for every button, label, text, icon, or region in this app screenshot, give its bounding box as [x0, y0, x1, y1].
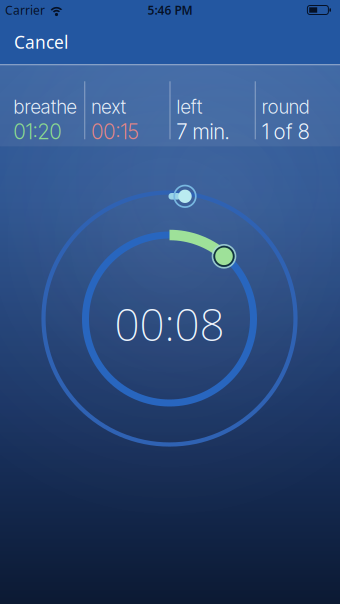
staticText: 00:08	[114, 295, 224, 353]
staticText: next	[91, 95, 126, 118]
button[interactable]: Cancel	[0, 30, 68, 53]
staticText: 5:46 PM	[147, 2, 192, 18]
staticText: 7 min.	[176, 119, 229, 144]
staticText: 00:15	[91, 119, 139, 144]
staticText: 01:20	[13, 119, 61, 144]
staticText: Carrier	[5, 2, 45, 18]
staticText: 1 of 8	[262, 119, 310, 144]
staticText: round	[262, 95, 310, 118]
staticText: breathe	[13, 95, 76, 118]
staticText: left	[176, 95, 202, 118]
staticText: Cancel	[14, 30, 68, 53]
